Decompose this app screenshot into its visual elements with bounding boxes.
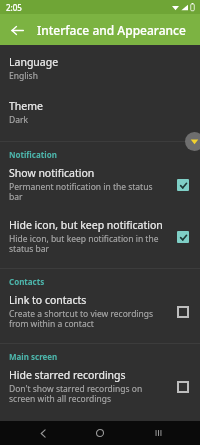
button[interactable]: Link to contacts	[0, 290, 200, 333]
button[interactable]: Unchecked	[173, 302, 193, 322]
staticText: 2:05	[6, 2, 22, 13]
staticText: Create a shortcut to view recordings fro…	[9, 308, 167, 330]
staticText: Interface and Appearance	[37, 22, 186, 38]
button[interactable]: Hide icon, but keep notification	[0, 215, 200, 258]
button[interactable]: Show notification	[0, 163, 200, 206]
button[interactable]: Back	[28, 421, 58, 445]
staticText: Hide icon, but keep notification in the …	[9, 233, 167, 255]
staticText: English	[9, 70, 38, 82]
staticText: Permanent notification in the status bar	[9, 181, 167, 203]
staticText: Show notification	[9, 166, 95, 180]
staticText: Main screen	[9, 351, 58, 362]
staticText: Dark	[9, 114, 29, 126]
button[interactable]: Recents	[143, 421, 173, 445]
staticText: Theme	[9, 99, 43, 113]
staticText: Language	[9, 55, 59, 69]
button[interactable]: Hide starred recordings	[0, 365, 200, 408]
button[interactable]: Home	[85, 421, 115, 445]
staticText: Notification	[9, 149, 57, 160]
button[interactable]: Back	[5, 18, 29, 42]
staticText: Contacts	[9, 276, 45, 287]
button[interactable]: Theme	[0, 96, 200, 129]
staticText: Link to contacts	[9, 293, 87, 307]
button[interactable]: Fast scroll	[185, 132, 200, 151]
staticText: Hide starred recordings	[9, 368, 126, 382]
staticText: Hide icon, but keep notification	[9, 218, 163, 232]
button[interactable]: Language	[0, 52, 200, 85]
staticText: Don't show starred recordings on screen …	[9, 383, 167, 405]
button[interactable]: Checked	[173, 227, 193, 247]
button[interactable]: Unchecked	[173, 377, 193, 397]
button[interactable]: Checked	[173, 175, 193, 195]
